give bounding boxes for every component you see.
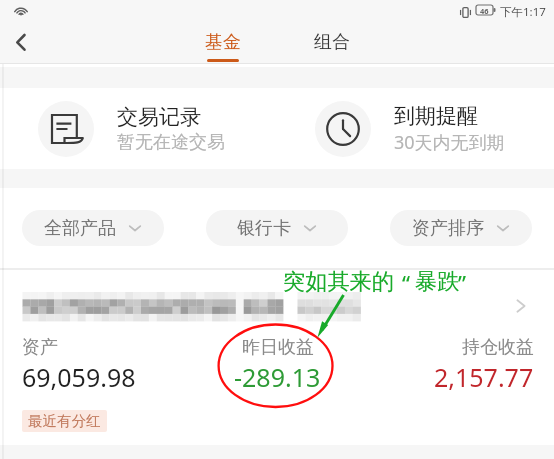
staticText: 组合 <box>314 31 350 54</box>
staticText: 2,157.77 <box>434 360 534 394</box>
staticText: 30天内无到期 <box>394 130 505 155</box>
staticText: ” <box>458 268 466 298</box>
staticText: 最近有分红 <box>28 412 101 430</box>
button[interactable]: 银行卡 <box>206 210 348 246</box>
staticText: 46 <box>480 6 489 16</box>
staticText: 全部产品 <box>44 217 116 240</box>
staticText: 资产排序 <box>412 217 484 240</box>
staticText: 到期提醒 <box>394 103 478 129</box>
staticText: 昨日收益 <box>242 336 314 359</box>
button[interactable]: 全部产品 <box>22 210 164 246</box>
staticText: 突如其来的 <box>283 268 394 296</box>
other: Details <box>512 297 530 315</box>
staticText: 暴跌 <box>415 268 460 296</box>
staticText: -289.13 <box>234 360 321 394</box>
button[interactable]: 交易记录 <box>38 101 277 157</box>
button[interactable]: Details <box>0 270 554 445</box>
staticText: 下午1:17 <box>500 4 546 20</box>
staticText: 基金 <box>205 31 241 54</box>
button[interactable]: 基金 <box>199 25 247 63</box>
button[interactable]: Back <box>0 25 40 63</box>
button[interactable]: 到期提醒 <box>315 101 554 157</box>
staticText: 持仓收益 <box>462 336 534 359</box>
button[interactable]: 组合 <box>307 25 357 63</box>
staticText: 69,059.98 <box>22 360 136 394</box>
staticText: 银行卡 <box>237 217 291 240</box>
staticText: 资产 <box>22 336 58 359</box>
staticText: 暂无在途交易 <box>117 131 225 154</box>
button[interactable]: 资产排序 <box>390 210 532 246</box>
staticText: “ <box>402 268 410 298</box>
staticText: 交易记录 <box>117 104 201 130</box>
